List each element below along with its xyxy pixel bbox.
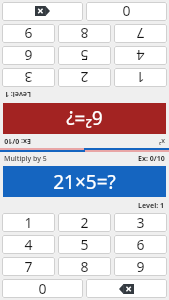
staticText: Ex: 0/10 bbox=[4, 136, 31, 146]
button[interactable]: 0 bbox=[2, 279, 83, 298]
button[interactable]: 1 bbox=[114, 68, 167, 87]
button[interactable]: 4 bbox=[2, 235, 55, 254]
staticText: 9 bbox=[24, 24, 33, 43]
staticText: Multiply by 5 bbox=[4, 154, 47, 164]
staticText: 21×5=? bbox=[53, 169, 116, 195]
button[interactable]: 6²=? bbox=[3, 103, 166, 134]
staticText: 3 bbox=[136, 213, 145, 232]
button[interactable]: 9 bbox=[114, 257, 167, 276]
button[interactable]: 8 bbox=[58, 257, 111, 276]
staticText: 4 bbox=[136, 46, 145, 65]
button[interactable]: 7 bbox=[2, 257, 55, 276]
button[interactable]: 6 bbox=[2, 46, 55, 65]
staticText: Ex: 0/10 bbox=[138, 154, 165, 164]
staticText: Level: 1 bbox=[138, 201, 165, 211]
staticText: 1 bbox=[136, 68, 145, 87]
staticText: 0 bbox=[122, 2, 131, 21]
button[interactable]: 3 bbox=[2, 68, 55, 87]
staticText: 2 bbox=[80, 68, 89, 87]
staticText: 7 bbox=[24, 257, 33, 276]
button[interactable]: 2 bbox=[58, 68, 111, 87]
button[interactable]: 6 bbox=[114, 235, 167, 254]
button[interactable]: 3 bbox=[114, 213, 167, 232]
staticText: 7 bbox=[136, 24, 145, 43]
button[interactable]: 9 bbox=[2, 24, 55, 43]
button[interactable]: Backspace bbox=[2, 2, 83, 21]
staticText: 5 bbox=[80, 235, 89, 254]
button[interactable]: 21×5=? bbox=[3, 166, 166, 197]
staticText: Level: 1 bbox=[4, 89, 31, 99]
staticText: 8 bbox=[80, 24, 89, 43]
button[interactable]: 8 bbox=[58, 24, 111, 43]
staticText: 6²=? bbox=[66, 105, 103, 131]
staticText: x² bbox=[158, 136, 165, 146]
staticText: 6 bbox=[136, 235, 145, 254]
button[interactable]: 5 bbox=[58, 46, 111, 65]
staticText: 2 bbox=[80, 213, 89, 232]
button[interactable]: 4 bbox=[114, 46, 167, 65]
button[interactable]: 0 bbox=[86, 2, 167, 21]
staticText: 3 bbox=[24, 68, 33, 87]
staticText: 0 bbox=[38, 279, 47, 298]
staticText: 9 bbox=[136, 257, 145, 276]
staticText: 1 bbox=[24, 213, 33, 232]
staticText: 8 bbox=[80, 257, 89, 276]
button[interactable]: 1 bbox=[2, 213, 55, 232]
button[interactable]: 2 bbox=[58, 213, 111, 232]
staticText: 5 bbox=[80, 46, 89, 65]
button[interactable]: 7 bbox=[114, 24, 167, 43]
button[interactable]: 5 bbox=[58, 235, 111, 254]
button[interactable]: Backspace bbox=[86, 279, 167, 298]
staticText: 6 bbox=[24, 46, 33, 65]
staticText: 4 bbox=[24, 235, 33, 254]
